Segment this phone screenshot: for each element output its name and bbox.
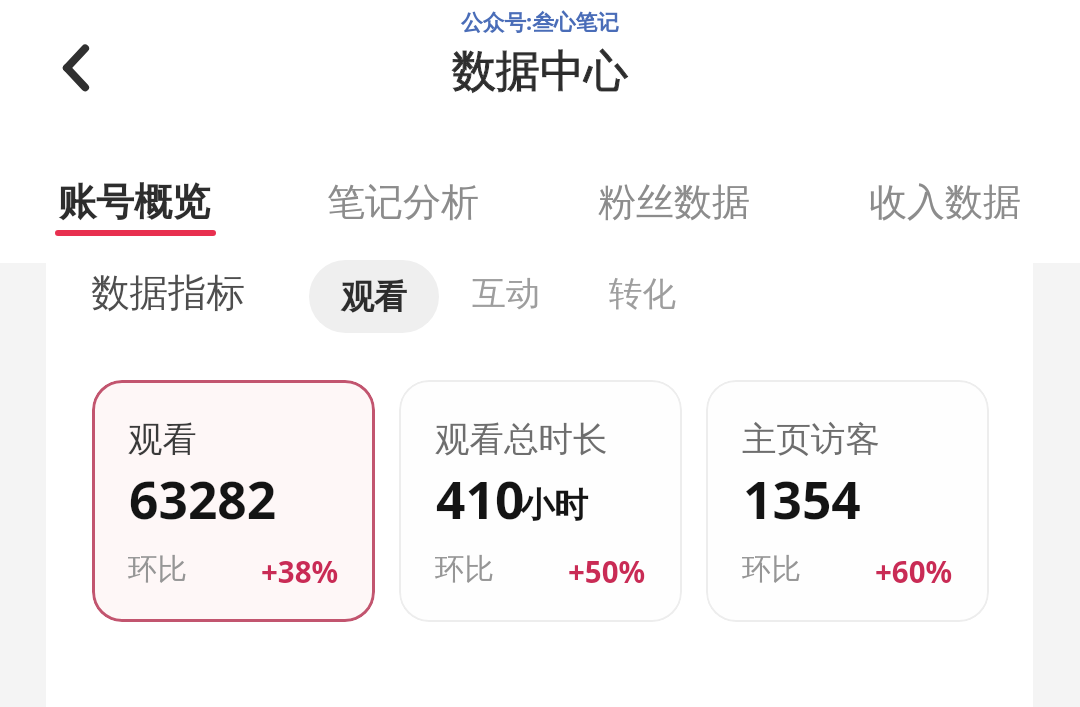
staticText: 观看总时长: [435, 418, 608, 461]
button[interactable]: 观看: [92, 380, 375, 622]
staticText: 互动: [472, 272, 540, 315]
button[interactable]: 转化: [552, 255, 732, 332]
staticText: 环比: [128, 551, 187, 588]
staticText: 观看: [341, 276, 407, 318]
staticText: +60%: [875, 551, 953, 591]
staticText: 410: [436, 464, 525, 534]
staticText: 主页访客: [742, 418, 880, 461]
button[interactable]: 粉丝数据: [564, 178, 784, 248]
button[interactable]: 账号概览: [23, 178, 243, 248]
button[interactable]: 笔记分析: [293, 178, 513, 248]
staticText: 1354: [743, 464, 861, 534]
staticText: 笔记分析: [327, 178, 479, 226]
button[interactable]: 观看: [309, 260, 439, 333]
staticText: 公众号:叁心笔记: [461, 7, 619, 37]
button[interactable]: 收入数据: [835, 178, 1055, 248]
staticText: 转化: [609, 273, 676, 315]
staticText: 环比: [742, 551, 801, 588]
staticText: 环比: [435, 551, 494, 588]
staticText: 数据中心: [452, 44, 628, 99]
staticText: 63282: [129, 464, 277, 534]
staticText: +38%: [261, 551, 339, 591]
button[interactable]: 主页访客: [706, 380, 989, 622]
button[interactable]: Back: [36, 29, 116, 109]
staticText: 收入数据: [869, 178, 1021, 226]
staticText: 小时: [520, 484, 588, 527]
staticText: 粉丝数据: [598, 178, 750, 226]
button[interactable]: 互动: [416, 255, 596, 332]
staticText: 数据中心: [452, 44, 628, 99]
button[interactable]: 数据指标: [78, 255, 258, 332]
staticText: 数据指标: [91, 269, 245, 318]
staticText: 账号概览: [58, 178, 210, 226]
staticText: +50%: [568, 551, 646, 591]
button[interactable]: 观看总时长: [399, 380, 682, 622]
staticText: 观看: [128, 418, 197, 461]
